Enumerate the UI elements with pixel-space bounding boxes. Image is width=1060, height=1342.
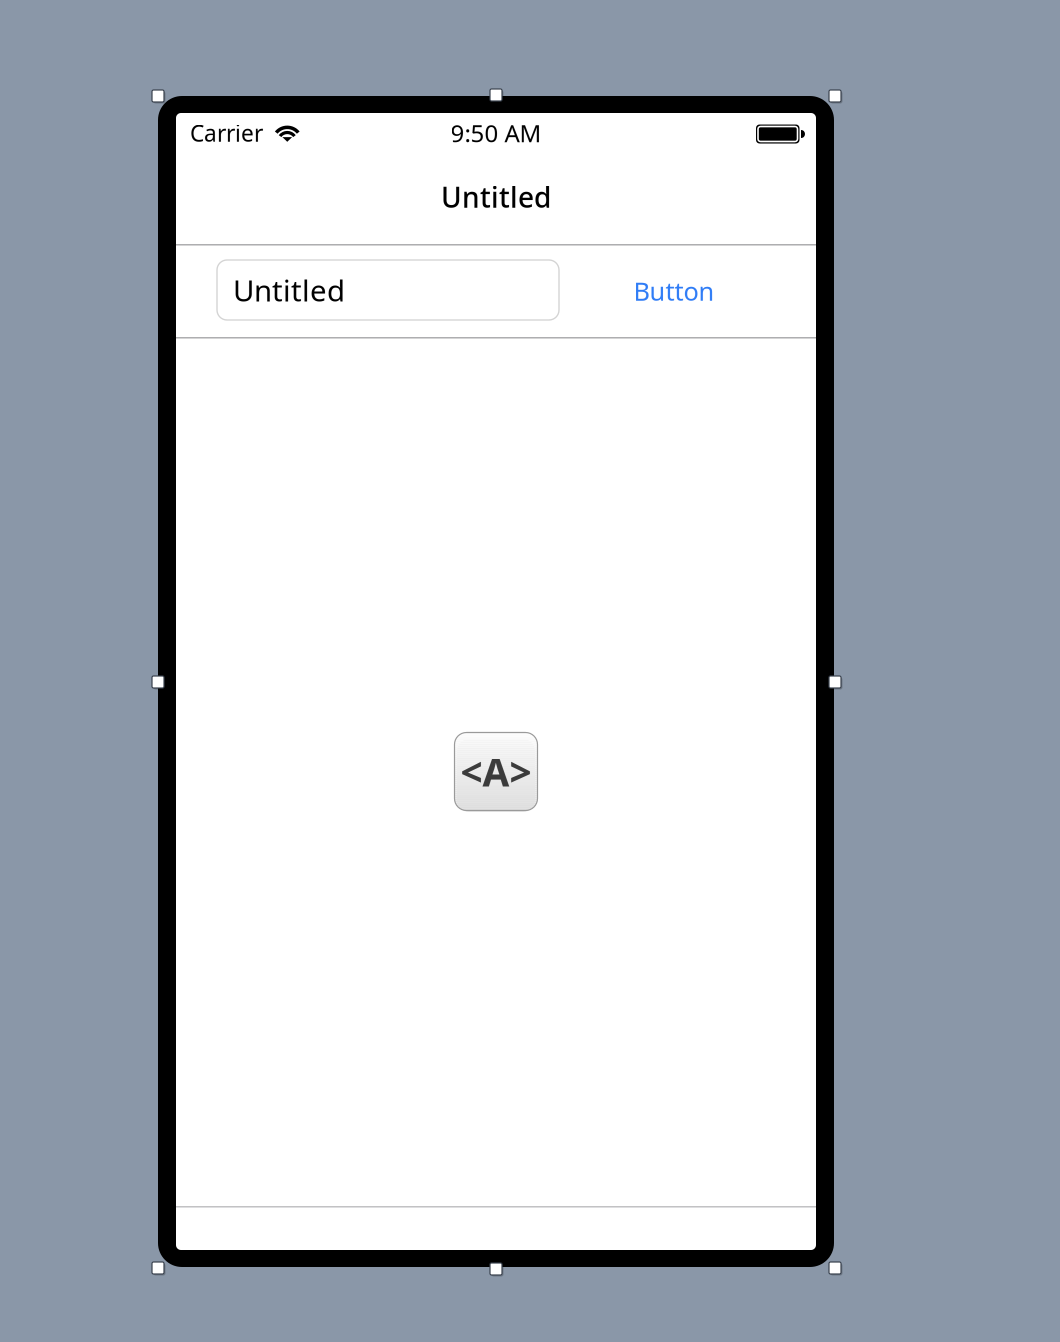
staticText: Carrier — [190, 118, 263, 148]
staticText: Untitled — [441, 178, 551, 216]
staticText: Untitled — [233, 270, 345, 309]
staticText: <A> — [460, 746, 531, 797]
button[interactable]: Untitled text field — [217, 260, 559, 320]
staticText: Button — [633, 274, 714, 308]
staticText: 9:50 AM — [450, 117, 541, 149]
button[interactable]: Button — [602, 245, 746, 336]
